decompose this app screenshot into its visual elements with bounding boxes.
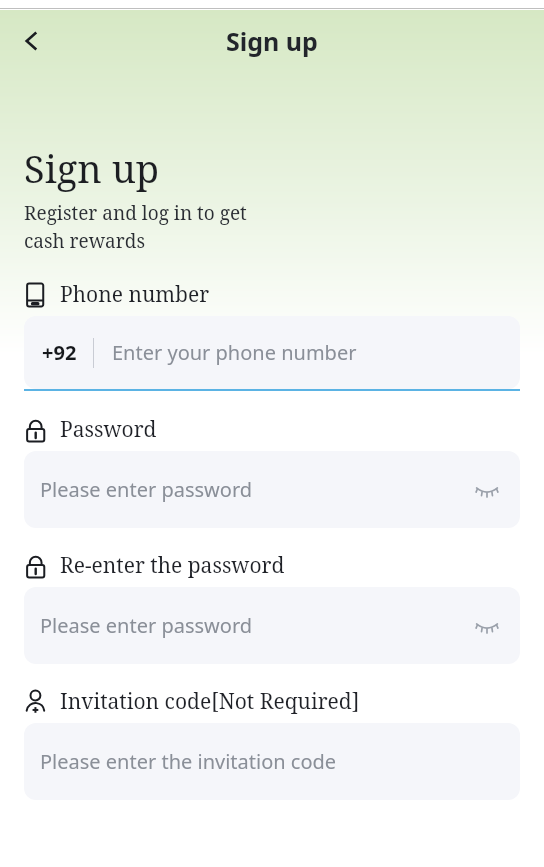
staticText: Please enter password xyxy=(40,612,253,639)
staticText: Password xyxy=(60,415,157,444)
staticText: Please enter password xyxy=(40,476,253,503)
staticText: Sign up xyxy=(226,24,318,58)
staticText: +92 xyxy=(42,339,77,366)
button[interactable]: Show password xyxy=(470,609,504,643)
staticText: Invitation code[Not Required] xyxy=(60,687,360,716)
button[interactable]: Please enter password xyxy=(24,451,520,528)
staticText: Phone number xyxy=(60,280,210,309)
staticText: Re-enter the password xyxy=(60,551,285,580)
button[interactable]: Back xyxy=(9,19,53,63)
staticText: Sign up xyxy=(24,142,160,194)
button[interactable]: +92 xyxy=(24,316,520,389)
staticText: Enter your phone number xyxy=(112,339,357,366)
button[interactable]: Please enter the invitation code xyxy=(24,723,520,800)
button[interactable]: Please enter password xyxy=(24,587,520,664)
button[interactable]: Show password xyxy=(470,473,504,507)
staticText: Register and log in to get cash rewards xyxy=(24,200,247,254)
staticText: Please enter the invitation code xyxy=(40,748,337,775)
